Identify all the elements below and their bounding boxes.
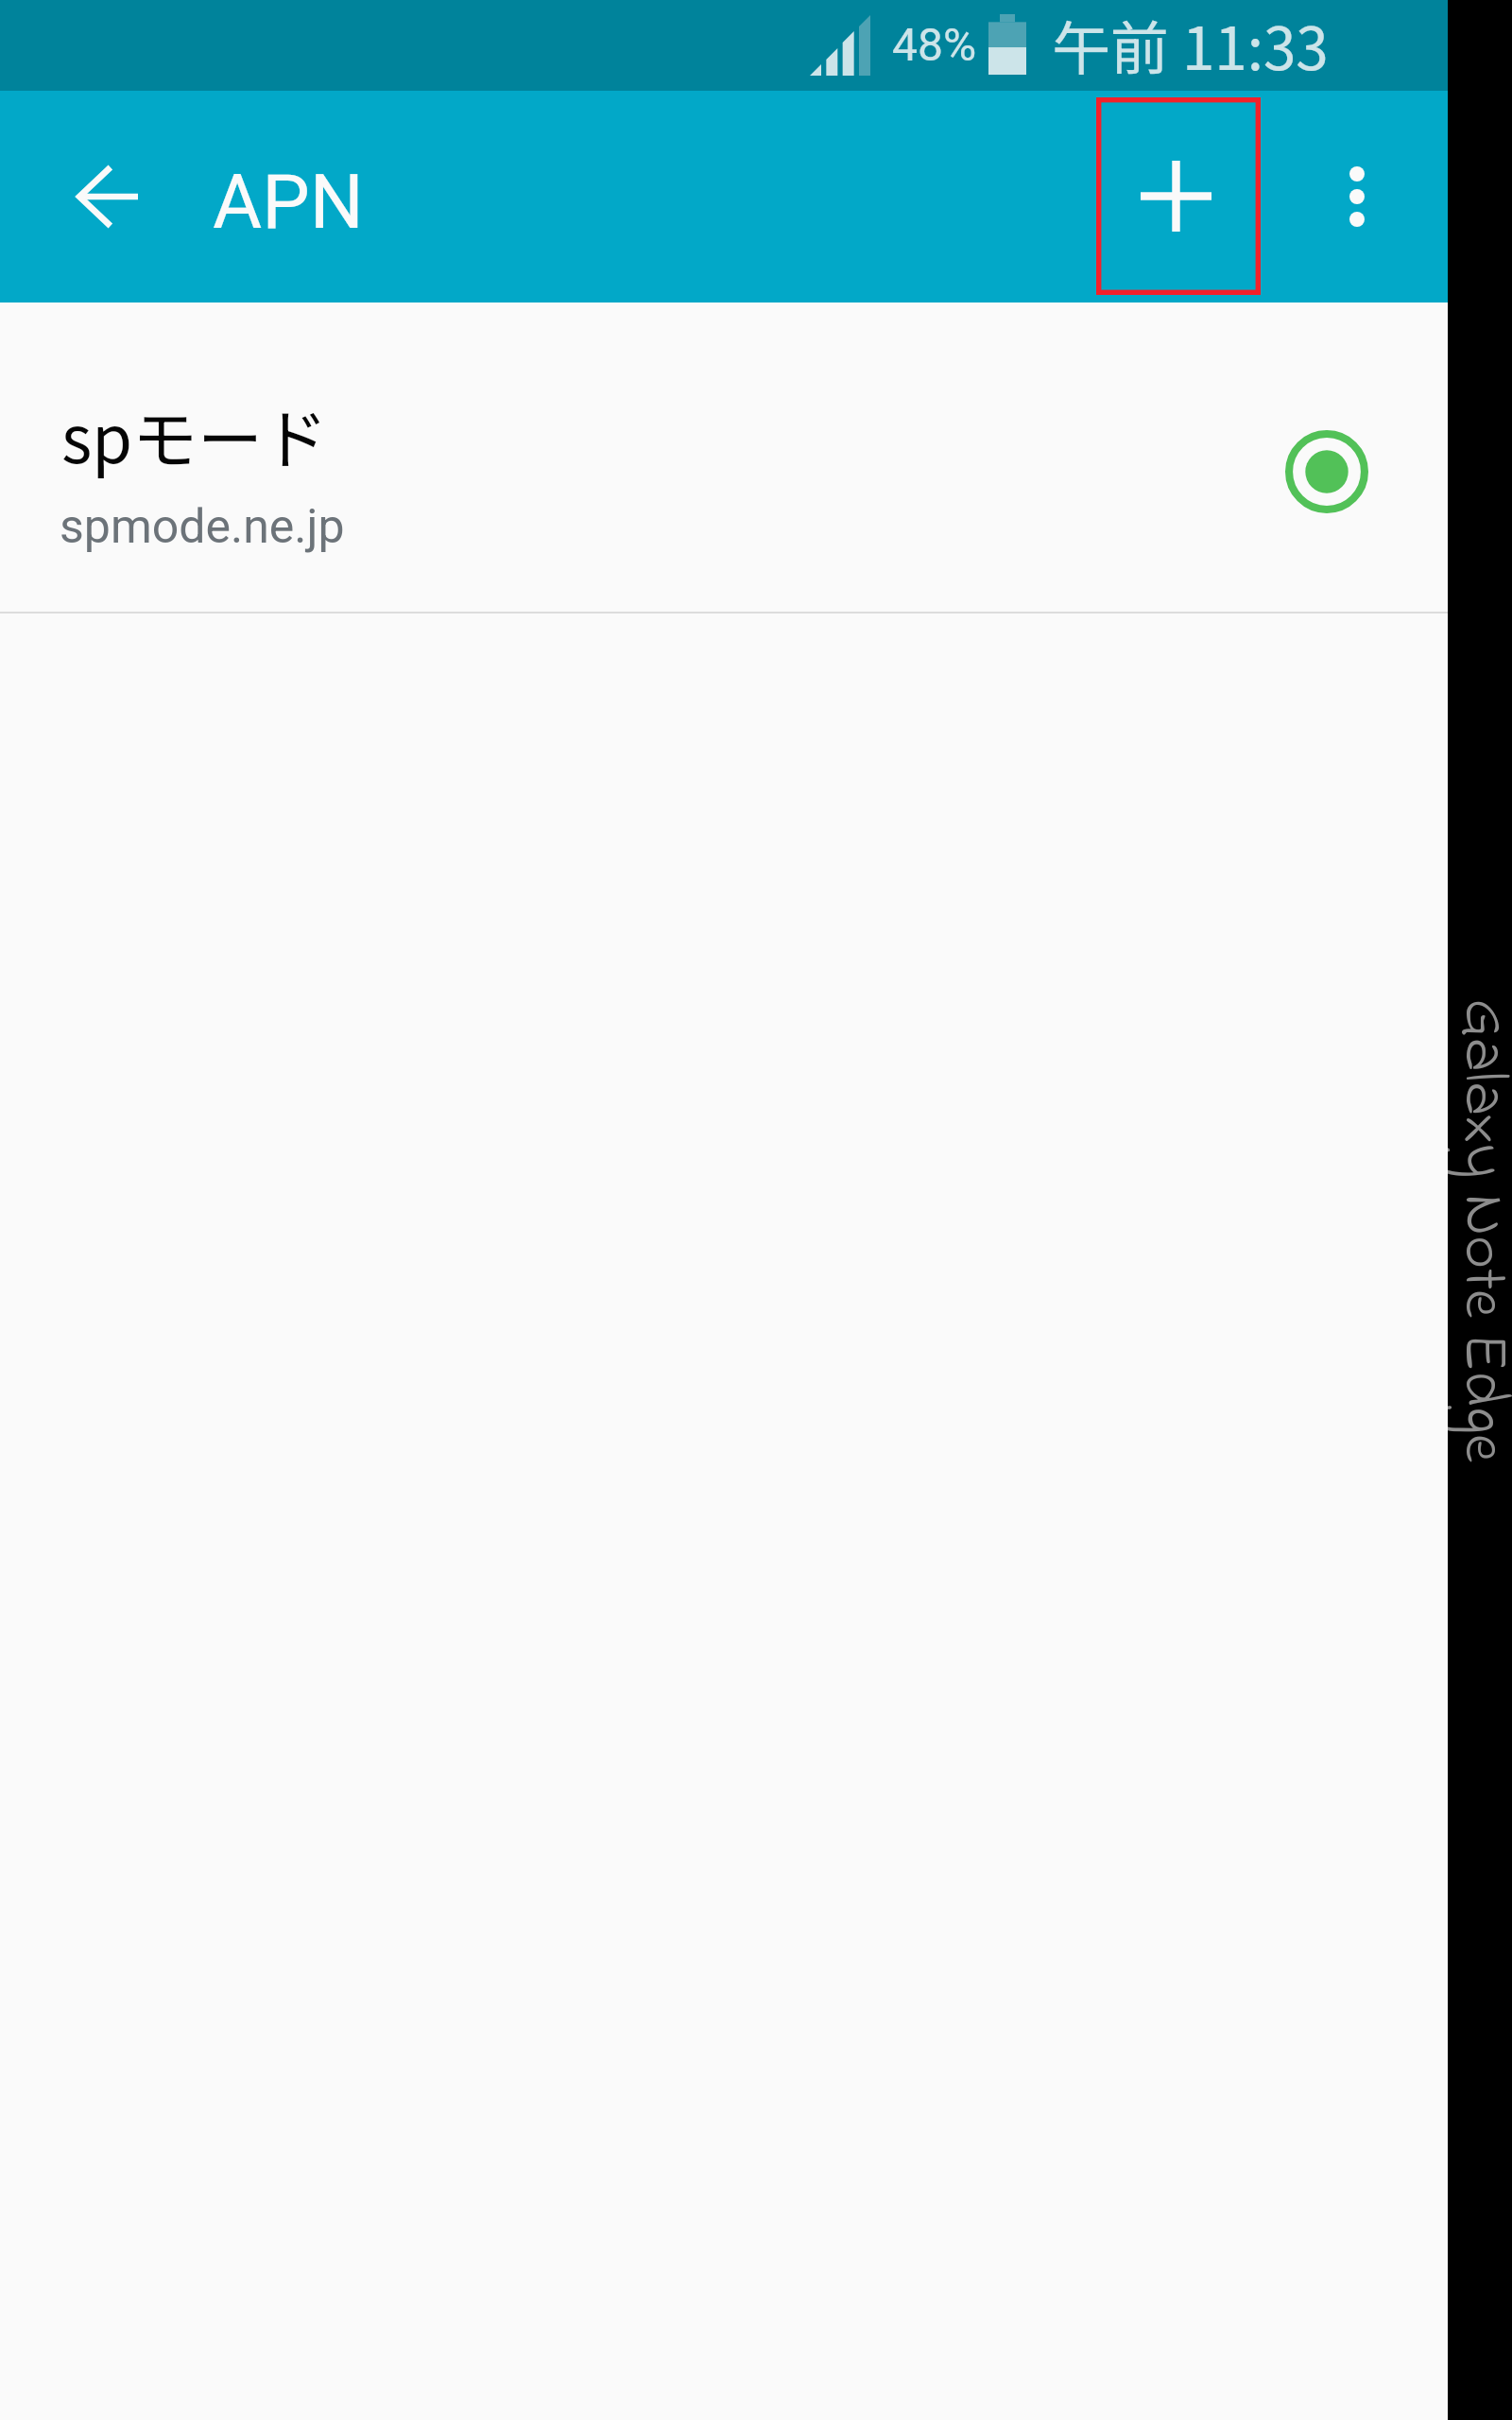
staticText: spモード	[61, 388, 329, 482]
button[interactable]: Add APN	[1096, 97, 1261, 295]
other: Mobile signal strength	[810, 15, 870, 76]
staticText: APN	[213, 158, 364, 247]
staticText: 48%	[892, 18, 977, 71]
button[interactable]: spモード	[0, 302, 1448, 612]
button[interactable]: spmode.ne.jp selected	[1266, 411, 1387, 532]
staticText: spmode.ne.jp	[60, 499, 345, 555]
other: Galaxy Note Edge panel	[1448, 0, 1512, 2420]
button[interactable]: Navigate up	[18, 106, 199, 287]
other: Battery 48 percent	[988, 14, 1026, 75]
button[interactable]: More options	[1266, 106, 1448, 287]
staticText: 午前 11:33	[1052, 2, 1329, 87]
